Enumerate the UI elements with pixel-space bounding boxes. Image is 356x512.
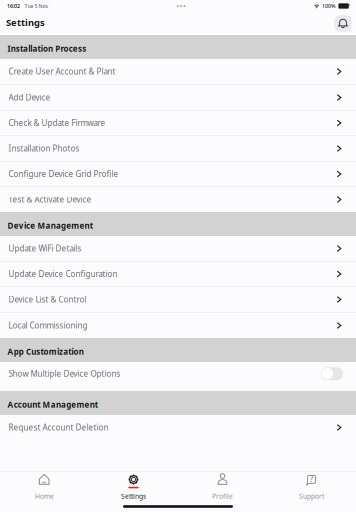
button[interactable]: Configure Device Grid Profile <box>0 162 356 187</box>
staticText: Settings <box>6 16 45 28</box>
staticText: Installation Process <box>7 43 86 54</box>
button[interactable]: Update Device Configuration <box>0 262 356 287</box>
button[interactable]: Check & Update Firmware <box>0 111 356 136</box>
staticText: Account Management <box>7 399 98 410</box>
staticText: Add Device <box>9 92 51 103</box>
staticText: Update Device Configuration <box>9 269 118 279</box>
button[interactable]: Device List & Control <box>0 287 356 313</box>
staticText: ? <box>309 474 313 484</box>
button[interactable]: ? <box>267 470 356 503</box>
button[interactable]: Notifications <box>334 15 352 32</box>
staticText: Configure Device Grid Profile <box>9 169 119 179</box>
button[interactable]: Add Device <box>0 85 356 111</box>
button[interactable]: Create User Account & Plant <box>0 59 356 85</box>
staticText: Show Multiple Device Options <box>9 368 121 379</box>
button[interactable]: Home <box>0 470 89 503</box>
staticText: Create User Account & Plant <box>9 66 116 77</box>
button[interactable]: Update WiFi Details <box>0 236 356 262</box>
staticText: Home <box>35 492 54 501</box>
staticText: Profile <box>212 492 233 501</box>
staticText: Test & Activate Device <box>9 194 92 205</box>
staticText: Tue 5 Nov <box>24 2 48 10</box>
button[interactable]: Test & Activate Device <box>0 187 356 212</box>
staticText: Check & Update Firmware <box>9 118 106 128</box>
button[interactable]: Profile <box>178 470 267 503</box>
staticText: 100% <box>322 2 336 10</box>
staticText: Device Management <box>7 220 93 231</box>
staticText: Local Commissioning <box>9 320 88 331</box>
button[interactable]: Request Account Deletion <box>0 415 356 440</box>
staticText: Installation Photos <box>9 143 80 154</box>
staticText: App Customization <box>7 346 84 357</box>
staticText: Support <box>299 492 324 501</box>
staticText: 16:02 <box>7 2 20 10</box>
staticText: Request Account Deletion <box>9 422 109 433</box>
staticText: Update WiFi Details <box>9 243 82 254</box>
button[interactable]: Settings <box>89 470 178 503</box>
staticText: Settings <box>121 492 146 501</box>
button[interactable]: Installation Photos <box>0 136 356 162</box>
button[interactable]: Local Commissioning <box>0 313 356 338</box>
button[interactable]: Show Multiple Device Options <box>0 362 356 391</box>
staticText: Device List & Control <box>9 294 87 305</box>
